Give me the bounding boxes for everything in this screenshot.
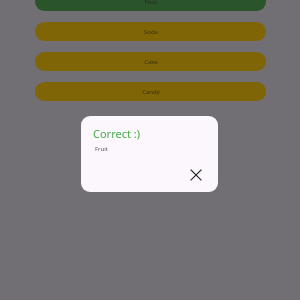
staticText: Soda	[144, 28, 158, 36]
button[interactable]: Soda	[35, 22, 266, 41]
button[interactable]: Fruit	[35, 0, 266, 11]
staticText: Fruit	[95, 145, 109, 153]
staticText: Fruit	[144, 0, 158, 6]
staticText: Cake	[144, 58, 158, 66]
button[interactable]: Close	[184, 163, 208, 187]
button[interactable]: Candy	[35, 82, 266, 101]
staticText: Candy	[142, 88, 160, 96]
staticText: Correct :)	[93, 126, 141, 141]
button[interactable]: Cake	[35, 52, 266, 71]
